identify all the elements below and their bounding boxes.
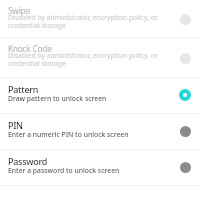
button[interactable]: Password — [0, 150, 200, 185]
staticText: PIN — [8, 119, 23, 131]
staticText: Swipe — [8, 5, 30, 16]
staticText: Password — [8, 155, 48, 167]
staticText: Pattern — [8, 83, 39, 95]
staticText: Enter a password to unlock screen — [8, 166, 120, 175]
staticText: Knock Code — [8, 43, 52, 54]
staticText: Disabled by administrator, encryption po… — [8, 51, 158, 68]
button[interactable]: Swipe — [0, 0, 200, 37]
staticText: Draw pattern to unlock screen — [8, 94, 107, 103]
button[interactable]: Pattern — [0, 78, 200, 113]
button[interactable]: PIN — [0, 114, 200, 149]
staticText: Disabled by administrator, encryption po… — [8, 13, 158, 30]
button[interactable]: Knock Code — [0, 38, 200, 77]
staticText: Enter a numeric PIN to unlock screen — [8, 130, 129, 139]
